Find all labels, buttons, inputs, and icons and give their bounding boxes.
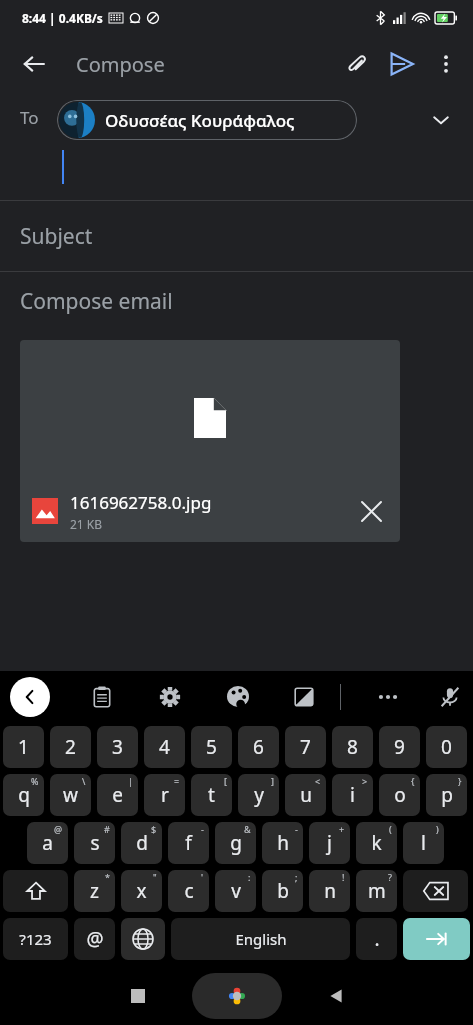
button[interactable]: Subject: [0, 201, 473, 271]
button[interactable]: 5: [191, 726, 232, 768]
button[interactable]: More: [366, 675, 410, 719]
staticText: r: [161, 782, 169, 808]
button[interactable]: f: [168, 822, 209, 864]
staticText: *: [105, 871, 110, 883]
button[interactable]: e: [97, 774, 138, 816]
staticText: ): [436, 823, 439, 835]
button[interactable]: m: [356, 870, 397, 912]
staticText: i: [350, 782, 355, 808]
staticText: f: [185, 830, 192, 856]
button[interactable]: j: [309, 822, 350, 864]
staticText: 1: [18, 734, 29, 760]
button[interactable]: v: [215, 870, 256, 912]
staticText: w: [63, 782, 78, 808]
staticText: y: [254, 782, 264, 808]
button[interactable]: .: [356, 918, 397, 960]
button[interactable]: Assistant: [192, 973, 282, 1019]
button[interactable]: n: [309, 870, 350, 912]
button[interactable]: Οδυσσέας Κουράφαλος: [57, 100, 357, 140]
button[interactable]: @: [74, 918, 115, 960]
staticText: 6: [253, 734, 264, 760]
button[interactable]: w: [50, 774, 91, 816]
button[interactable]: 3: [97, 726, 138, 768]
button[interactable]: Back: [314, 974, 358, 1018]
button[interactable]: q: [3, 774, 44, 816]
button[interactable]: c: [168, 870, 209, 912]
button[interactable]: Themes: [216, 675, 260, 719]
button[interactable]: a: [27, 822, 68, 864]
button[interactable]: 8: [332, 726, 373, 768]
button[interactable]: l: [403, 822, 444, 864]
button[interactable]: ?123: [3, 918, 68, 960]
button[interactable]: Clipboard: [80, 675, 124, 719]
button[interactable]: u: [285, 774, 326, 816]
button[interactable]: y: [238, 774, 279, 816]
button[interactable]: 1: [3, 726, 44, 768]
button[interactable]: Send: [379, 41, 425, 87]
button[interactable]: More options: [425, 43, 467, 85]
button[interactable]: r: [144, 774, 185, 816]
staticText: #: [104, 823, 110, 835]
staticText: @: [54, 823, 63, 835]
button[interactable]: p: [426, 774, 467, 816]
staticText: <: [315, 775, 321, 787]
button[interactable]: [403, 870, 468, 912]
button[interactable]: Collapse toolbar: [10, 677, 50, 717]
staticText: !: [342, 871, 345, 883]
button[interactable]: English: [171, 918, 350, 960]
button[interactable]: b: [262, 870, 303, 912]
button[interactable]: 6: [238, 726, 279, 768]
button[interactable]: 0: [426, 726, 467, 768]
staticText: Οδυσσέας Κουράφαλος: [105, 109, 295, 132]
staticText: \: [82, 775, 86, 787]
button[interactable]: [121, 918, 165, 960]
button[interactable]: z: [74, 870, 115, 912]
staticText: 8: [347, 734, 358, 760]
staticText: -: [201, 823, 204, 835]
staticText: b: [277, 878, 289, 904]
button[interactable]: 4: [144, 726, 185, 768]
staticText: (: [389, 823, 392, 835]
button[interactable]: [3, 870, 68, 912]
button[interactable]: [403, 918, 470, 960]
staticText: p: [441, 782, 453, 808]
staticText: 5: [206, 734, 217, 760]
button[interactable]: 9: [379, 726, 420, 768]
button[interactable]: 7: [285, 726, 326, 768]
staticText: q: [18, 782, 30, 808]
staticText: .: [374, 926, 380, 952]
staticText: -: [295, 823, 298, 835]
button[interactable]: Expand recipients: [421, 100, 461, 140]
button[interactable]: Voice input off: [428, 675, 472, 719]
button[interactable]: 2: [50, 726, 91, 768]
staticText: %: [31, 775, 39, 787]
button[interactable]: o: [379, 774, 420, 816]
button[interactable]: Attach file: [335, 42, 379, 86]
staticText: 8:44 | 0.4KB/s: [22, 10, 103, 26]
button[interactable]: i: [332, 774, 373, 816]
button[interactable]: g: [215, 822, 256, 864]
button[interactable]: k: [356, 822, 397, 864]
staticText: 21 KB: [70, 516, 103, 532]
staticText: &: [244, 823, 251, 835]
staticText: Compose: [76, 51, 165, 78]
button[interactable]: h: [262, 822, 303, 864]
button[interactable]: One-handed mode: [282, 675, 326, 719]
button[interactable]: 1616962758.0.jpg: [20, 340, 400, 542]
staticText: Compose email: [20, 287, 173, 316]
staticText: 2: [65, 734, 76, 760]
button[interactable]: Compose email: [0, 272, 473, 330]
button[interactable]: Settings: [148, 675, 192, 719]
staticText: 7: [300, 734, 311, 760]
button[interactable]: t: [191, 774, 232, 816]
staticText: ?: [388, 871, 392, 883]
staticText: t: [208, 782, 215, 808]
staticText: e: [112, 782, 123, 808]
button[interactable]: Back: [12, 42, 56, 86]
button[interactable]: d: [121, 822, 162, 864]
button[interactable]: Recents: [116, 974, 160, 1018]
button[interactable]: Remove attachment: [350, 490, 392, 532]
button[interactable]: s: [74, 822, 115, 864]
button[interactable]: x: [121, 870, 162, 912]
staticText: a: [42, 830, 53, 856]
